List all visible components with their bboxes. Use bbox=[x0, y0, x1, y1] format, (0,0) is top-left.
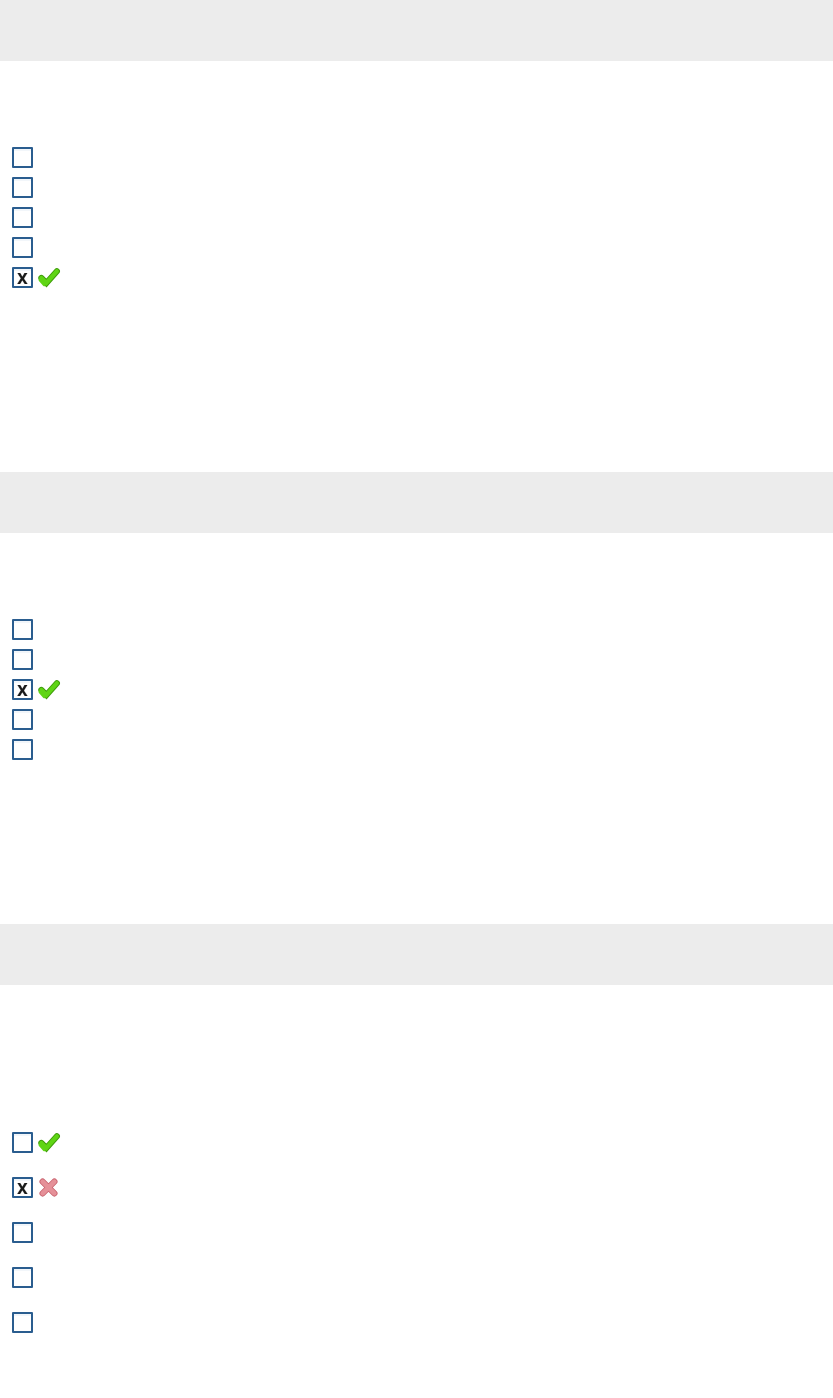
button[interactable]: Correct answer bbox=[38, 267, 59, 288]
button[interactable]: Section 1 option 4 bbox=[0, 237, 833, 258]
staticText: X bbox=[17, 1178, 28, 1198]
button[interactable]: Section 2 option 4 bbox=[0, 709, 833, 730]
button[interactable]: Section 3 option 2 bbox=[0, 1177, 833, 1198]
button[interactable]: Section 2 option 1 bbox=[0, 619, 833, 640]
button[interactable]: Section 1 option 2 bbox=[0, 177, 833, 198]
button[interactable]: Section 2 option 5 bbox=[0, 739, 833, 760]
button[interactable]: Section 3 option 5 bbox=[0, 1312, 833, 1333]
button[interactable]: Section 1 option 1 bbox=[0, 147, 833, 168]
button[interactable]: Section 2 option 2 bbox=[0, 649, 833, 670]
button[interactable]: Incorrect answer bbox=[38, 1177, 59, 1198]
staticText: X bbox=[17, 268, 28, 288]
staticText: X bbox=[17, 680, 28, 700]
button[interactable]: Section 3 option 1 bbox=[0, 1132, 833, 1153]
button[interactable]: Section 1 option 5 bbox=[0, 267, 833, 288]
button[interactable]: Correct answer bbox=[38, 1132, 59, 1153]
button[interactable]: Section 3 option 4 bbox=[0, 1267, 833, 1288]
button[interactable]: Section 3 option 3 bbox=[0, 1222, 833, 1243]
button[interactable]: Section 1 option 3 bbox=[0, 207, 833, 228]
button[interactable]: Section 2 option 3 bbox=[0, 679, 833, 700]
button[interactable]: Correct answer bbox=[38, 679, 59, 700]
